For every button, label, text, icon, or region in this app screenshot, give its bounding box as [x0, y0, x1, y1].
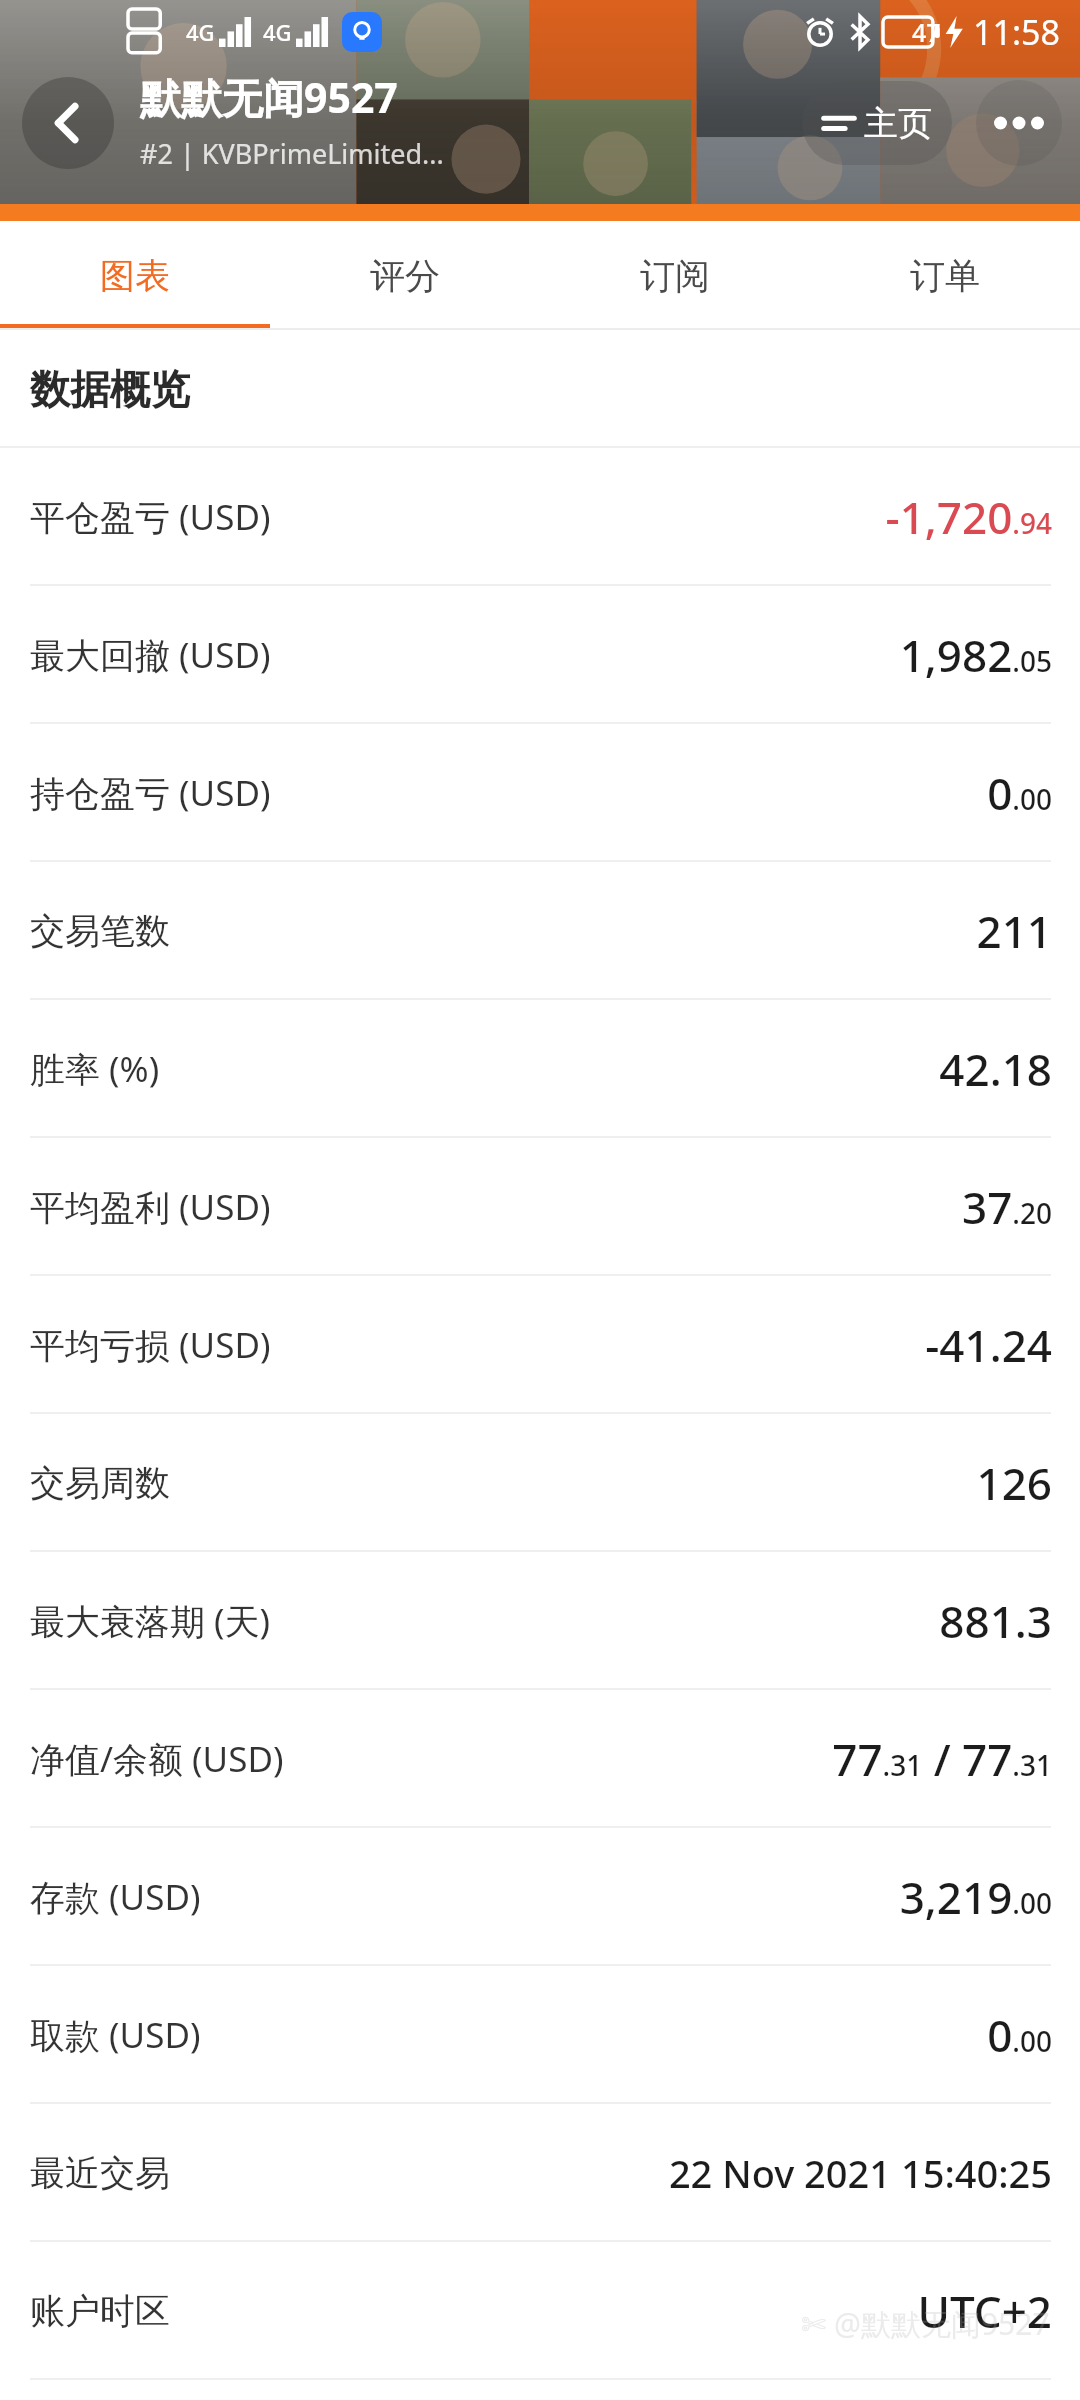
- button[interactable]: 评分: [270, 221, 540, 330]
- staticText: 77.31 / 77.31: [832, 1729, 1052, 1789]
- staticText: 取款 (USD): [30, 2011, 201, 2059]
- staticText: 订阅: [640, 254, 710, 298]
- staticText: 持仓盈亏 (USD): [30, 769, 271, 817]
- staticText: 37.20: [962, 1177, 1052, 1237]
- staticText: 22 Nov 2021 15:40:25: [668, 2147, 1052, 2199]
- staticText: 账户时区: [30, 2289, 170, 2333]
- button[interactable]: 订单: [810, 221, 1080, 330]
- staticText: 4G: [186, 17, 215, 47]
- button[interactable]: More options: [976, 80, 1062, 166]
- button[interactable]: 胜率 (%): [0, 1000, 1080, 1138]
- button[interactable]: 平均亏损 (USD): [0, 1276, 1080, 1414]
- staticText: 胜率 (%): [30, 1045, 160, 1093]
- button[interactable]: 最大衰落期 (天): [0, 1552, 1080, 1690]
- staticText: 1,982.05: [899, 625, 1052, 685]
- staticText: 211: [976, 901, 1052, 961]
- staticText: 881.3: [939, 1591, 1052, 1651]
- staticText: 最大衰落期 (天): [30, 1597, 271, 1645]
- staticText: 平仓盈亏 (USD): [30, 493, 271, 541]
- staticText: UTC+2: [917, 2281, 1052, 2341]
- button[interactable]: 取款 (USD): [0, 1966, 1080, 2104]
- staticText: -41.24: [925, 1315, 1052, 1375]
- button[interactable]: Back: [22, 77, 114, 169]
- button[interactable]: 最大回撤 (USD): [0, 586, 1080, 724]
- staticText: 交易周数: [30, 1461, 170, 1505]
- staticText: 0.00: [987, 763, 1052, 823]
- staticText: 最大回撤 (USD): [30, 631, 271, 679]
- button[interactable]: 交易笔数: [0, 862, 1080, 1000]
- staticText: 图表: [100, 254, 170, 298]
- staticText: #2 | KVBPrimeLimited...: [140, 135, 444, 172]
- button[interactable]: 订阅: [540, 221, 810, 330]
- staticText: -1,720.94: [885, 487, 1052, 547]
- staticText: 3,219.00: [899, 1867, 1052, 1927]
- staticText: 数据概览: [30, 364, 190, 414]
- button[interactable]: 主页: [802, 81, 952, 165]
- button[interactable]: 平仓盈亏 (USD): [0, 448, 1080, 586]
- staticText: 默默无闻9527: [140, 69, 398, 125]
- staticText: 交易笔数: [30, 909, 170, 953]
- button[interactable]: 持仓盈亏 (USD): [0, 724, 1080, 862]
- staticText: 最近交易: [30, 2151, 170, 2195]
- button[interactable]: 账户时区: [0, 2242, 1080, 2380]
- staticText: 126: [976, 1453, 1052, 1513]
- staticText: 评分: [370, 254, 440, 298]
- button[interactable]: 平均盈利 (USD): [0, 1138, 1080, 1276]
- button[interactable]: 最近交易: [0, 2104, 1080, 2242]
- button[interactable]: 交易周数: [0, 1414, 1080, 1552]
- button[interactable]: 净值/余额 (USD): [0, 1690, 1080, 1828]
- staticText: 净值/余额 (USD): [30, 1735, 284, 1783]
- staticText: 存款 (USD): [30, 1873, 201, 1921]
- button[interactable]: 图表: [0, 221, 270, 330]
- staticText: ✄ @默默无闻9527: [801, 2303, 1050, 2344]
- staticText: 平均盈利 (USD): [30, 1183, 271, 1231]
- staticText: 主页: [864, 102, 932, 145]
- staticText: 47: [912, 15, 941, 49]
- button[interactable]: 存款 (USD): [0, 1828, 1080, 1966]
- staticText: 订单: [910, 254, 980, 298]
- staticText: 4G: [263, 17, 292, 47]
- staticText: 11:58: [973, 9, 1060, 55]
- staticText: 0.00: [987, 2005, 1052, 2065]
- staticText: 平均亏损 (USD): [30, 1321, 271, 1369]
- staticText: 42.18: [939, 1039, 1052, 1099]
